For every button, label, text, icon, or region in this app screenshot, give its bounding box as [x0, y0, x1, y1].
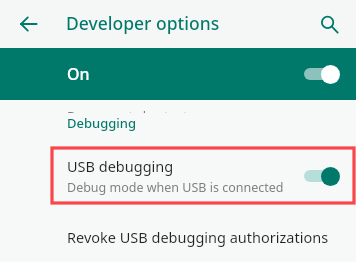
staticText: Bug report shortcut: [67, 107, 188, 113]
staticText: Developer options: [66, 11, 220, 35]
staticText: Debugging: [67, 114, 137, 132]
button[interactable]: On: [0, 48, 356, 100]
staticText: Debug mode when USB is connected: [67, 179, 284, 196]
button[interactable]: Search: [310, 5, 348, 43]
staticText: On: [67, 63, 90, 85]
staticText: Revoke USB debugging authorizations: [67, 227, 329, 247]
button[interactable]: Navigate up: [10, 5, 48, 43]
button[interactable]: USB debugging: [0, 149, 356, 203]
staticText: USB debugging: [67, 156, 174, 176]
button[interactable]: Revoke USB debugging authorizations: [0, 217, 356, 257]
